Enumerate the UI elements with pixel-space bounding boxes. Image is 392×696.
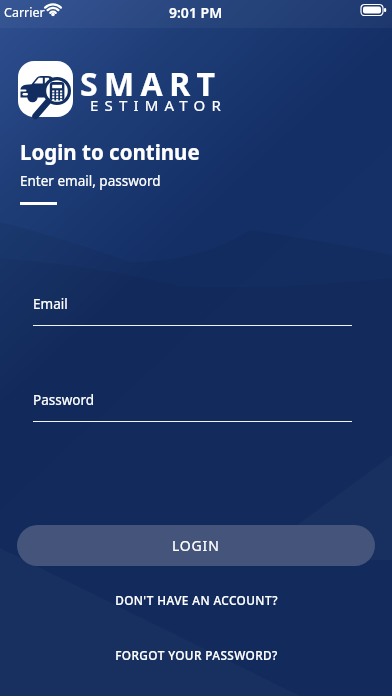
staticText: Enter email, password [20,172,161,190]
button[interactable]: FORGOT YOUR PASSWORD? [109,641,284,669]
staticText: FORGOT YOUR PASSWORD? [115,647,278,663]
button[interactable]: Email [33,290,352,326]
staticText: Email [33,295,68,313]
staticText: 9:01 PM [169,3,223,22]
staticText: Password [33,391,95,409]
staticText: DON'T HAVE AN ACCOUNT? [115,592,278,608]
staticText: LOGIN [172,536,220,555]
button[interactable]: DON'T HAVE AN ACCOUNT? [109,586,284,614]
button[interactable]: LOGIN [17,525,375,566]
button[interactable]: Password [33,386,352,422]
staticText: Carrier [4,4,45,21]
staticText: SMART [80,62,222,106]
staticText: Login to continue [20,138,200,166]
staticText: ESTIMATOR [90,95,228,115]
